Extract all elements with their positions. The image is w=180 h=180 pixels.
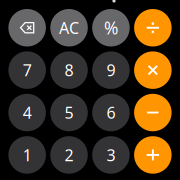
staticText: 6 [106,102,115,123]
button[interactable]: 1 [8,136,46,174]
button[interactable]: Delete [8,9,46,46]
button[interactable]: 2 [50,136,88,174]
button[interactable]: 4 [8,94,46,131]
staticText: AC [59,17,79,38]
staticText: 7 [23,59,32,81]
button[interactable]: 9 [92,51,130,89]
button[interactable]: Plus [134,136,172,174]
button[interactable]: AC [50,9,88,46]
button[interactable]: 7 [8,51,46,89]
button[interactable]: 5 [50,94,88,131]
staticText: 9 [106,59,115,81]
staticText: 5 [65,102,74,123]
button[interactable]: 3 [92,136,130,174]
staticText: 3 [106,144,115,165]
button[interactable]: % [92,9,130,46]
button[interactable]: 6 [92,94,130,131]
staticText: 4 [23,102,32,123]
button[interactable]: 8 [50,51,88,89]
button[interactable]: Minus [134,94,172,131]
button[interactable]: Multiply [134,51,172,89]
button[interactable]: Divide [134,9,172,46]
staticText: % [104,16,118,39]
staticText: 1 [23,144,32,165]
staticText: 8 [65,59,74,81]
staticText: 2 [65,144,74,165]
